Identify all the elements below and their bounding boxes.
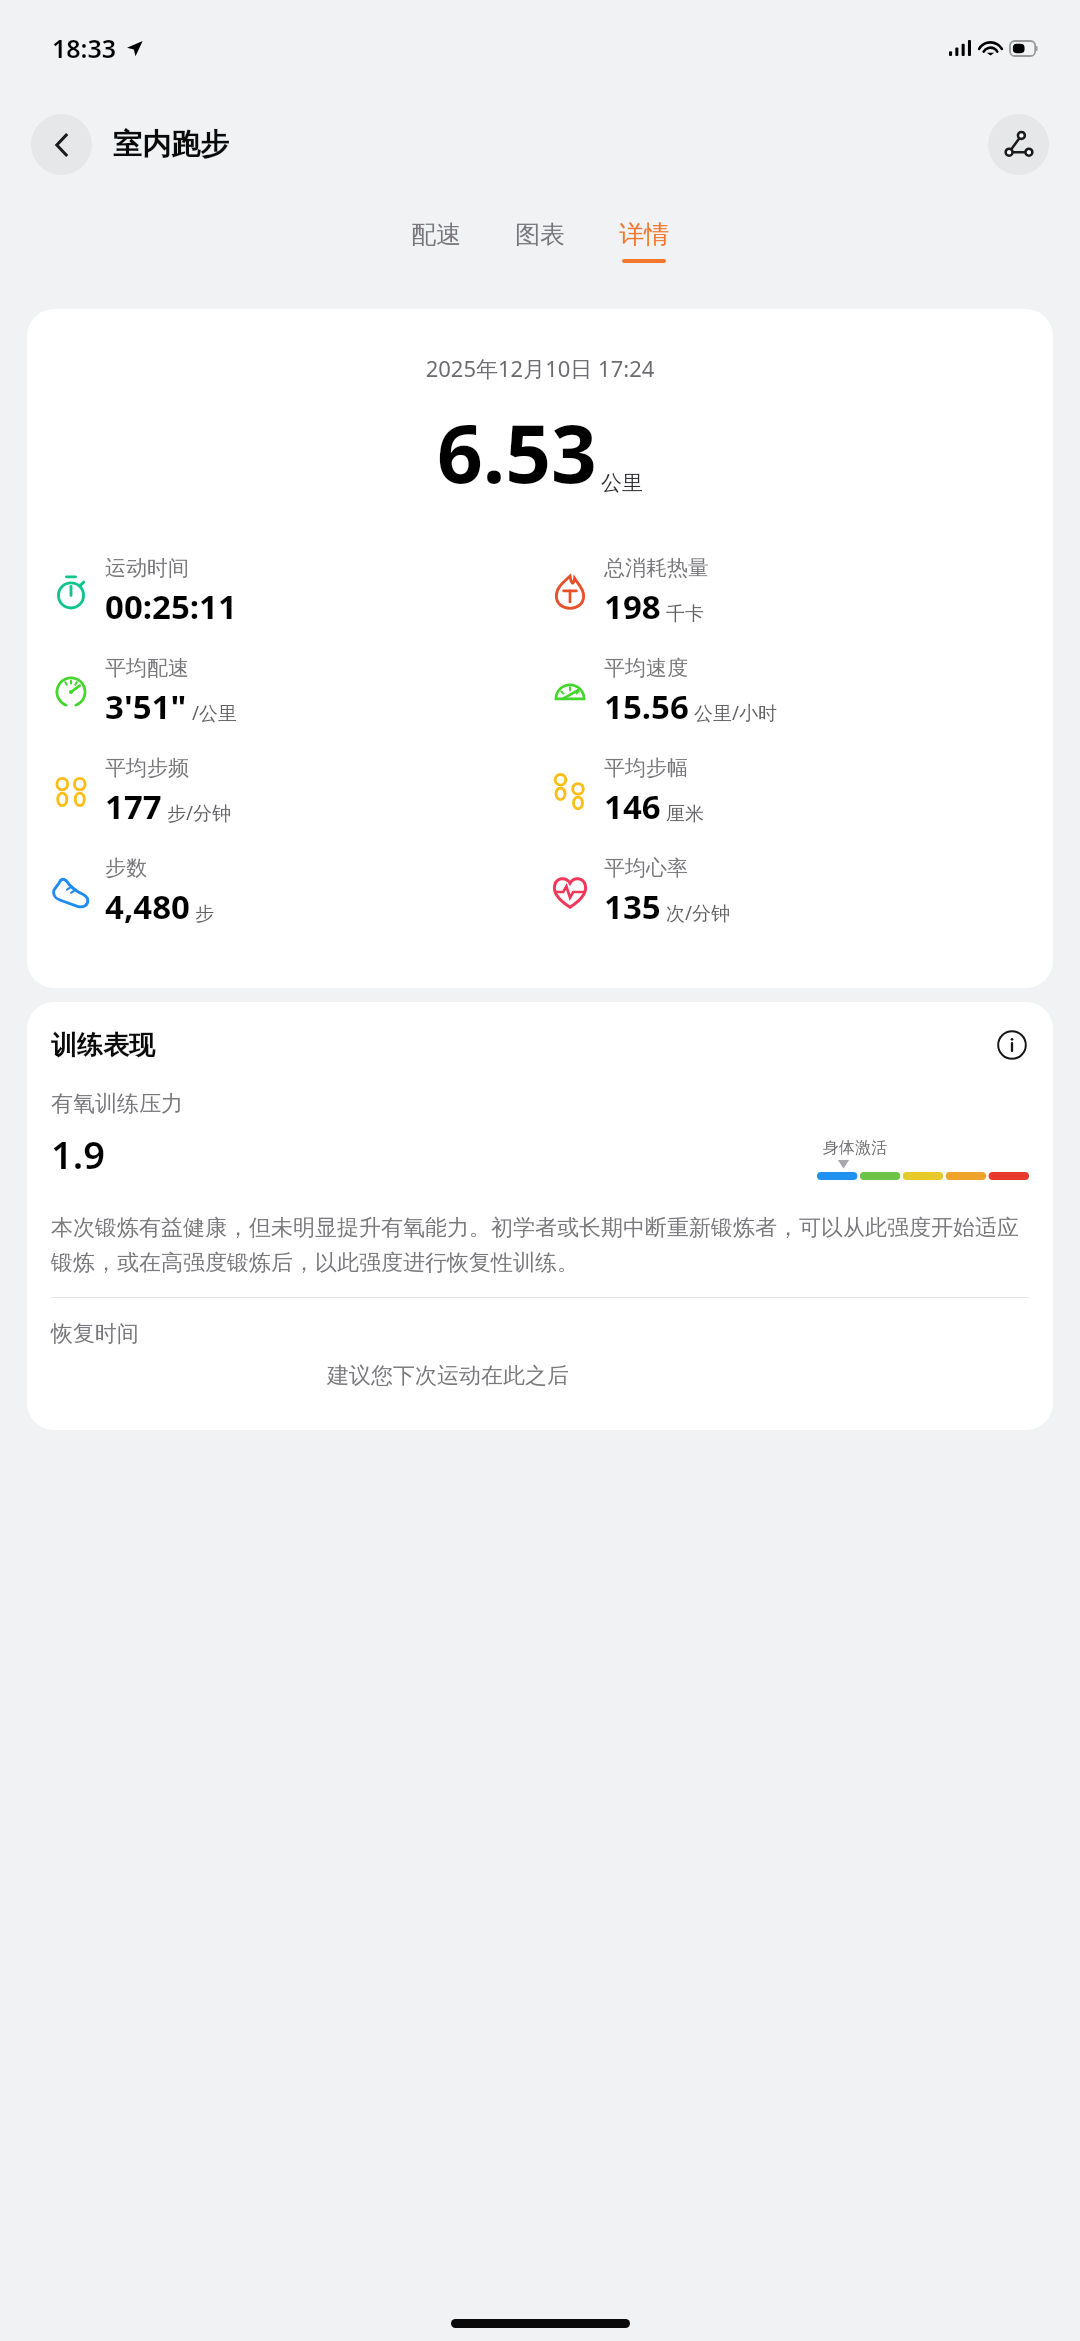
staticText: 平均心率 <box>604 855 688 881</box>
staticText: 总消耗热量 <box>604 555 709 581</box>
staticText: 135 <box>604 884 661 929</box>
staticText: 平均速度 <box>604 655 688 681</box>
button[interactable]: 分享 <box>988 114 1049 175</box>
staticText: 详情 <box>619 219 669 250</box>
staticText: 图表 <box>515 219 565 250</box>
staticText: 运动时间 <box>105 555 189 581</box>
staticText: 3'51" <box>105 684 187 729</box>
staticText: 18:33 <box>52 31 117 65</box>
staticText: 00:25:11 <box>105 584 237 629</box>
staticText: 步 <box>195 902 214 926</box>
staticText: /公里 <box>192 700 238 726</box>
staticText: 146 <box>604 784 661 829</box>
staticText: 4,480 <box>105 884 190 929</box>
staticText: 6.53 <box>437 397 597 506</box>
staticText: 198 <box>604 584 661 629</box>
button[interactable]: 图表 <box>507 219 573 263</box>
staticText: 次/分钟 <box>666 900 731 926</box>
staticText: 有氧训练压力 <box>51 1090 183 1118</box>
staticText: 177 <box>105 784 162 829</box>
button[interactable]: 详情 <box>611 219 677 263</box>
staticText: 步/分钟 <box>167 800 232 826</box>
staticText: 1.9 <box>51 1128 105 1180</box>
staticText: 公里 <box>601 470 643 496</box>
button[interactable]: 返回 <box>31 114 92 175</box>
button[interactable]: 说明 <box>995 1028 1029 1062</box>
staticText: 15.56 <box>604 684 689 729</box>
staticText: 室内跑步 <box>113 126 229 163</box>
staticText: 建议您下次运动在此之后 <box>327 1362 569 1390</box>
staticText: 平均步频 <box>105 755 189 781</box>
staticText: 平均步幅 <box>604 755 688 781</box>
staticText: 步数 <box>105 855 147 881</box>
staticText: 厘米 <box>666 802 704 826</box>
staticText: 配速 <box>411 219 461 250</box>
staticText: 2025年12月10日 17:24 <box>27 353 1053 383</box>
staticText: 身体激活 <box>823 1138 887 1158</box>
staticText: 本次锻炼有益健康，但未明显提升有氧能力。初学者或长期中断重新锻炼者，可以从此强度… <box>51 1214 1029 1277</box>
button[interactable]: 配速 <box>403 219 469 263</box>
staticText: 平均配速 <box>105 655 189 681</box>
staticText: 训练表现 <box>51 1029 155 1062</box>
staticText: 公里/小时 <box>694 700 778 726</box>
staticText: 恢复时间 <box>51 1320 139 1348</box>
staticText: 千卡 <box>666 602 704 626</box>
